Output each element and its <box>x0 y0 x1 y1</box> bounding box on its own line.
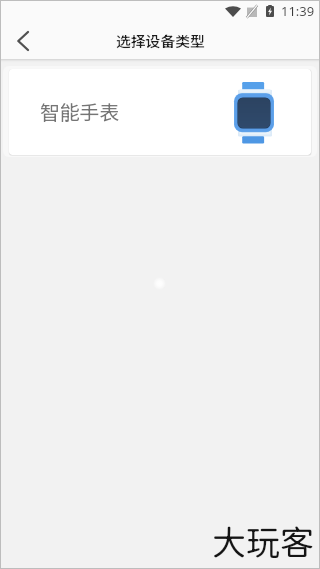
staticText: 大玩客 <box>212 522 314 562</box>
staticText: 智能手表 <box>40 97 120 126</box>
staticText: 11:39 <box>281 2 315 20</box>
button[interactable]: Back <box>0 21 44 59</box>
button[interactable]: 智能手表 <box>9 69 311 155</box>
staticText: 选择设备类型 <box>116 30 205 51</box>
